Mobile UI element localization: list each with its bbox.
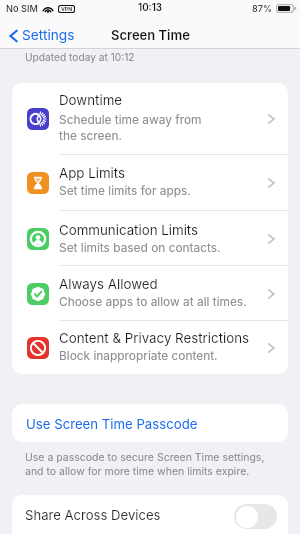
staticText: Updated today at 10:12 <box>25 51 135 63</box>
button[interactable]: Settings <box>9 27 75 44</box>
button[interactable]: Use Screen Time Passcode <box>12 404 288 442</box>
staticText: Downtime <box>59 92 123 108</box>
staticText: VPN <box>61 6 73 12</box>
staticText: Use a passcode to secure Screen Time set… <box>25 451 277 477</box>
staticText: Communication Limits <box>59 222 199 238</box>
button[interactable]: Downtime <box>12 83 288 155</box>
button[interactable]: Always Allowed <box>12 266 288 321</box>
button[interactable]: Share Across Devices <box>12 495 288 534</box>
button[interactable]: Share Across Devices toggle, off <box>234 504 277 529</box>
button[interactable]: Content & Privacy Restrictions <box>12 321 288 374</box>
staticText: Screen Time <box>111 27 190 43</box>
staticText: Settings <box>22 27 75 44</box>
staticText: Always Allowed <box>59 276 158 292</box>
staticText: No SIM <box>6 3 38 14</box>
staticText: App Limits <box>59 165 126 181</box>
staticText: Use Screen Time Passcode <box>26 416 198 432</box>
staticText: Block inappropriate content. <box>59 348 218 362</box>
button[interactable]: Communication Limits <box>12 211 288 266</box>
staticText: 87% <box>252 3 273 14</box>
staticText: Set time limits for apps. <box>59 183 191 197</box>
staticText: Choose apps to allow at all times. <box>59 294 247 308</box>
staticText: Set limits based on contacts. <box>59 240 221 254</box>
staticText: 10:13 <box>138 2 163 14</box>
button[interactable]: App Limits <box>12 155 288 211</box>
staticText: Schedule time away from the screen. <box>59 112 202 143</box>
staticText: Content & Privacy Restrictions <box>59 330 250 346</box>
staticText: Share Across Devices <box>25 507 161 523</box>
